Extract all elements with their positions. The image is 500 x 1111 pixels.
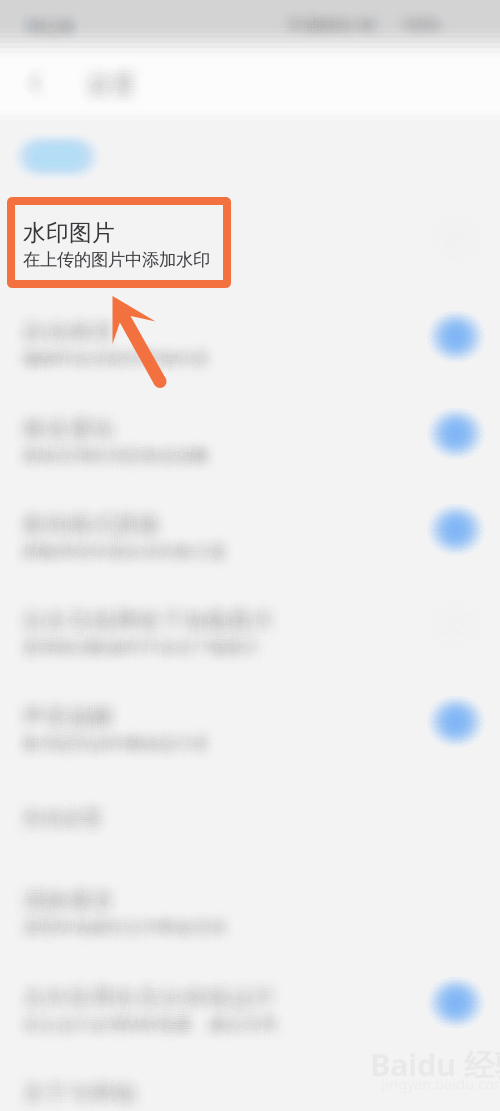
button[interactable]: 自动保存 <box>0 0 500 1111</box>
staticText: 自动保存 <box>11 320 103 348</box>
staticText: 编辑时自动保存草稿内容 <box>13 352 200 374</box>
staticText: 夜间模式跟随 <box>15 516 153 544</box>
button[interactable]: 仅在无线网络下加载图片 <box>0 0 500 1111</box>
staticText: 关于与帮助 <box>24 1072 139 1100</box>
staticText: 清除缓存 <box>20 890 112 918</box>
staticText: 使用移动数据时不自动下载图片 <box>21 633 259 654</box>
staticText: 新消息到达时播放提示音 <box>20 731 207 752</box>
staticText: 关于与帮助 <box>27 1087 142 1111</box>
staticText: 使用移动数据时不自动下载图片 <box>30 637 268 658</box>
staticText: 自动保存 <box>20 318 112 346</box>
staticText: 清理本地缓存文件释放空间 <box>24 909 228 931</box>
staticText: 清理本地缓存文件释放空间 <box>18 923 222 945</box>
staticText: 推送通知 <box>30 408 122 435</box>
staticText: 仅在无线网络下加载图片 <box>27 600 280 628</box>
staticText: 关于与帮助 <box>24 1074 139 1101</box>
staticText: 允许应用在后台持续运行 <box>15 979 268 1007</box>
staticText: 允许应用在后台持续运行 <box>24 976 277 1004</box>
staticText: 接收应用的消息推送提醒 <box>22 455 209 476</box>
button[interactable]: 声音提醒 <box>0 0 500 1111</box>
button[interactable]: 设置 <box>0 0 80 110</box>
staticText: 自动保存 <box>27 309 119 337</box>
staticText: 清除缓存 <box>19 879 111 907</box>
button[interactable]: 水印图片 <box>0 0 500 1111</box>
staticText: 10:24 <box>18 19 67 44</box>
staticText: 仅在无线网络下加载图片 <box>19 608 272 636</box>
staticText: 夜间模式跟随 <box>33 509 171 537</box>
staticText: 清理本地缓存文件释放空间 <box>16 909 220 930</box>
staticText: 10:24 <box>25 13 74 37</box>
staticText: 新消息到达时播放提示音 <box>20 736 207 757</box>
staticText: 新消息到达时播放提示音 <box>30 733 217 754</box>
staticText: 清理本地缓存文件释放空间 <box>28 917 232 939</box>
staticText: 清除缓存 <box>28 896 120 924</box>
staticText: 10:24 <box>22 11 71 36</box>
staticText: 清除缓存 <box>20 887 112 915</box>
staticText: 清理本地缓存文件释放空间 <box>17 914 221 936</box>
staticText: 自动保存 <box>19 312 111 340</box>
staticText: 其他设置 <box>12 802 92 826</box>
staticText: 自动保存 <box>17 325 109 353</box>
staticText: 推送通知 <box>22 418 114 446</box>
staticText: 夜间模式跟随 <box>20 514 158 542</box>
staticText: 使用移动数据时不自动下载图片 <box>14 631 252 652</box>
button[interactable]: 推送通知 <box>0 0 500 1111</box>
staticText: 其他设置 <box>14 804 94 828</box>
staticText: 新消息到达时播放提示音 <box>15 736 202 757</box>
staticText: 允许应用在后台持续运行 <box>19 988 272 1016</box>
staticText: 100% <box>405 11 445 32</box>
staticText: 后台运行会增加耗电量，建议关闭 <box>24 1019 279 1041</box>
staticText: 10:24 <box>21 12 70 37</box>
staticText: 声音提醒 <box>24 697 116 724</box>
staticText: 新消息到达时播放提示音 <box>22 741 209 762</box>
staticText: 编辑时自动保存草稿内容 <box>28 346 215 368</box>
staticText: 清除缓存 <box>19 881 111 909</box>
staticText: 10:24 <box>28 13 77 37</box>
staticText: 夜间模式跟随 <box>16 508 154 536</box>
staticText: 推送通知 <box>18 417 110 445</box>
staticText: 关于与帮助 <box>22 1080 137 1108</box>
staticText: 推送通知 <box>19 414 111 442</box>
staticText: 允许应用在后台持续运行 <box>23 991 276 1018</box>
staticText: 清除缓存 <box>17 894 109 922</box>
staticText: 允许应用在后台持续运行 <box>23 989 276 1016</box>
staticText: 后台运行会增加耗电量，建议关闭 <box>27 1006 282 1027</box>
staticText: 夜间模式跟随 <box>11 513 149 541</box>
staticText: 夜间模式跟随 <box>24 503 162 531</box>
staticText: 跟随系统外观自动切换主题 <box>12 543 216 564</box>
staticText: 声音提醒 <box>27 699 119 727</box>
button[interactable]: 关于与帮助 <box>0 0 500 1111</box>
staticText: 关于与帮助 <box>20 1083 135 1111</box>
staticText: 编辑时自动保存草稿内容 <box>20 357 207 379</box>
staticText: 仅在无线网络下加载图片 <box>29 608 282 635</box>
button[interactable]: 允许应用在后台持续运行 <box>0 0 500 1111</box>
staticText: 编辑时自动保存草稿内容 <box>17 345 204 367</box>
staticText: 新消息到达时播放提示音 <box>18 729 205 750</box>
staticText: 新消息到达时播放提示音 <box>22 733 209 754</box>
staticText: 新消息到达时播放提示音 <box>24 738 211 760</box>
staticText: 清除缓存 <box>33 888 125 916</box>
button[interactable]: 清除缓存 <box>0 0 500 1111</box>
staticText: 推送通知 <box>23 410 115 438</box>
staticText: 100% <box>404 7 444 29</box>
button[interactable]: 夜间模式跟随 <box>0 0 500 1111</box>
staticText: 100% <box>405 6 445 27</box>
staticText: 中国移动 4G <box>288 17 377 38</box>
staticText: 夜间模式跟随 <box>19 512 157 540</box>
staticText: 清理本地缓存文件释放空间 <box>19 914 223 935</box>
staticText: 清理本地缓存文件释放空间 <box>22 925 226 946</box>
staticText: 后台运行会增加耗电量，建议关闭 <box>20 1017 275 1038</box>
button[interactable]: Back <box>0 0 72 110</box>
staticText: 允许应用在后台持续运行 <box>30 991 283 1019</box>
staticText: 推送通知 <box>15 420 107 448</box>
staticText: 清理本地缓存文件释放空间 <box>18 913 222 934</box>
staticText: 编辑时自动保存草稿内容 <box>17 351 204 373</box>
staticText: 仅在无线网络下加载图片 <box>15 606 268 634</box>
staticText: 仅在无线网络下加载图片 <box>19 601 272 629</box>
staticText: 新消息到达时播放提示音 <box>23 737 210 759</box>
staticText: 100% <box>410 15 450 36</box>
staticText: 声音提醒 <box>14 696 106 724</box>
staticText: 仅在无线网络下加载图片 <box>24 599 277 627</box>
staticText: 仅在无线网络下加载图片 <box>23 608 276 636</box>
staticText: 其他设置 <box>24 798 104 822</box>
